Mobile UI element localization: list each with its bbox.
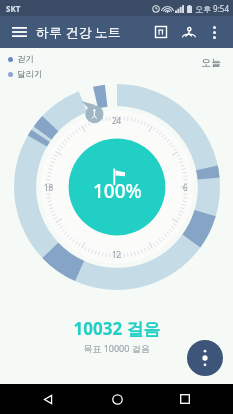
staticText: 24 [112,115,122,126]
staticText: 10032 걸음 [73,317,161,340]
other: Daily activity dial, 100 percent of goal [14,84,220,290]
staticText: 걷기 [17,54,34,65]
button[interactable]: Calendar [149,20,173,44]
staticText: 달리기 [17,69,43,80]
staticText: 100% [93,178,142,204]
button[interactable]: Recent apps [165,384,205,414]
staticText: 오늘 [201,56,221,69]
staticText: 6 [183,182,188,193]
staticText: 하루 건강 노트 [36,23,121,41]
button[interactable]: 오늘 [199,54,223,71]
button[interactable]: Home [97,384,137,414]
button[interactable]: More options [203,21,225,43]
staticText: 18 [44,182,54,193]
staticText: 오후 9:54 [195,3,229,14]
button[interactable]: Menu [8,21,30,43]
staticText: 목표 10000 걸음 [83,342,150,354]
button[interactable]: Location [177,20,201,44]
staticText: SKT [6,3,21,14]
button[interactable]: Back [28,384,68,414]
staticText: 12 [112,249,122,260]
button[interactable]: More actions [187,340,223,376]
